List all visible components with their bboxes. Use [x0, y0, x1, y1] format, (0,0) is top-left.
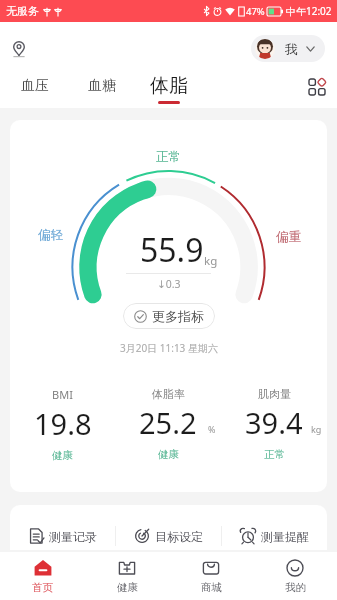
button[interactable]: 测量提醒: [222, 525, 327, 547]
staticText: 目标设定: [155, 529, 203, 544]
button[interactable]: BMI: [10, 387, 115, 462]
button[interactable]: 目标设定: [116, 525, 221, 547]
button[interactable]: 商城: [169, 552, 253, 600]
button[interactable]: 肌肉量: [221, 387, 327, 461]
staticText: %: [208, 423, 216, 435]
button[interactable]: 测量记录: [10, 525, 115, 547]
button[interactable]: 健康: [85, 552, 169, 600]
staticText: 健康: [158, 448, 179, 461]
staticText: 39.4: [245, 403, 303, 442]
button[interactable]: 体脂率: [115, 387, 221, 461]
staticText: 我的: [285, 581, 306, 594]
staticText: BMI: [52, 387, 73, 402]
staticText: 商城: [201, 581, 222, 594]
staticText: 测量记录: [49, 529, 97, 544]
staticText: 首页: [32, 581, 53, 594]
staticText: 肌肉量: [258, 387, 291, 401]
staticText: 25.2: [139, 403, 197, 442]
staticText: 偏轻: [38, 227, 63, 243]
staticText: 47%: [246, 5, 265, 18]
button[interactable]: 首页: [0, 552, 85, 600]
button[interactable]: Location: [9, 37, 29, 57]
staticText: kg: [311, 423, 322, 435]
button[interactable]: 体脂: [145, 74, 193, 104]
button[interactable]: 血压: [15, 77, 55, 95]
staticText: 测量提醒: [261, 529, 309, 544]
staticText: 血糖: [82, 77, 122, 95]
staticText: ↓0.3: [157, 277, 181, 291]
staticText: 19.8: [34, 404, 92, 443]
staticText: 体脂率: [152, 387, 185, 401]
staticText: 无服务: [6, 4, 39, 18]
button[interactable]: 我的: [253, 552, 337, 600]
staticText: 我: [285, 41, 298, 57]
staticText: 正常: [156, 149, 181, 165]
staticText: 健康: [117, 581, 138, 594]
staticText: 3月20日 11:13 星期六: [120, 341, 218, 355]
staticText: 健康: [52, 449, 73, 462]
staticText: 偏重: [276, 229, 301, 245]
staticText: 正常: [264, 448, 285, 461]
staticText: 中午12:02: [286, 4, 332, 18]
staticText: 体脂: [145, 74, 193, 98]
staticText: 血压: [15, 77, 55, 95]
button[interactable]: 我: [251, 35, 325, 62]
button[interactable]: Apps: [306, 76, 327, 97]
button[interactable]: 更多指标: [123, 303, 215, 329]
staticText: 更多指标: [152, 308, 204, 324]
button[interactable]: 血糖: [82, 77, 122, 95]
staticText: kg: [204, 253, 218, 269]
staticText: 55.9: [140, 228, 204, 272]
